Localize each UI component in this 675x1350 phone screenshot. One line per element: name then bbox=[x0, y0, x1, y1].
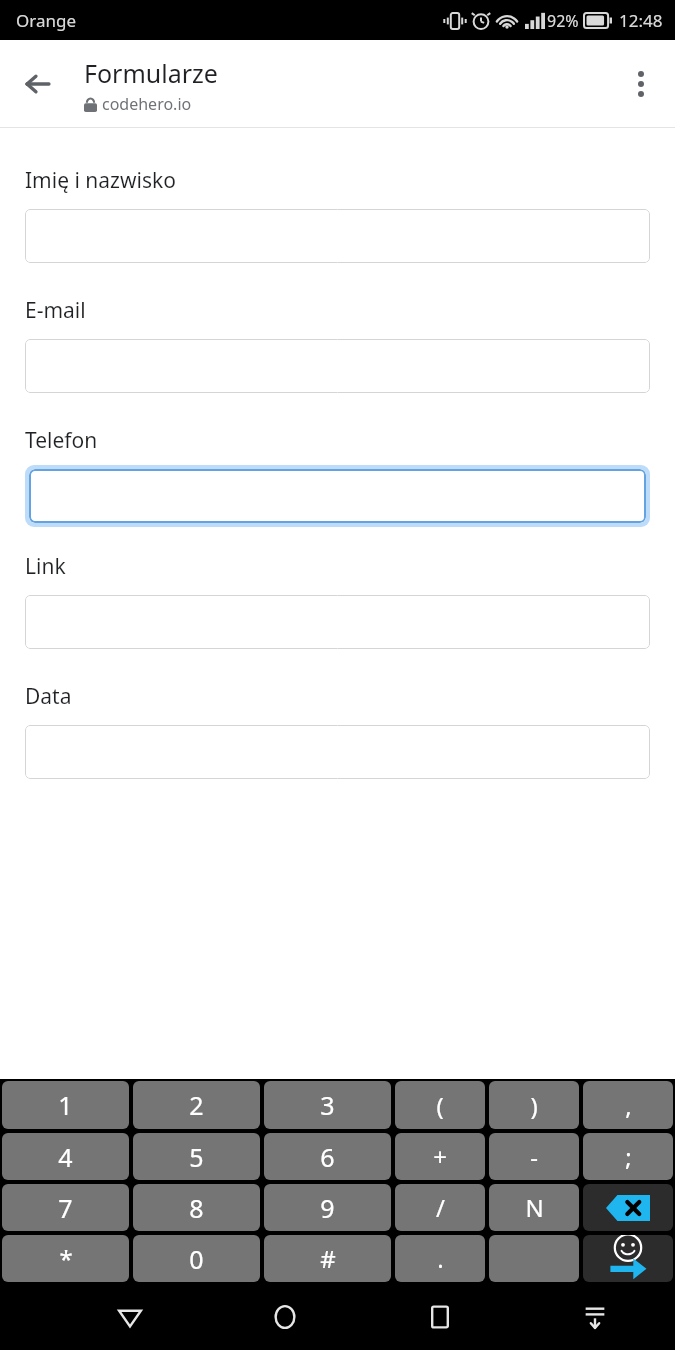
staticText: . bbox=[437, 1242, 444, 1275]
staticText: Imię i nazwisko bbox=[25, 166, 176, 195]
button[interactable]: 4 bbox=[2, 1133, 129, 1180]
button[interactable]: - bbox=[489, 1133, 579, 1180]
staticText: 1 bbox=[58, 1088, 73, 1122]
button[interactable]: 2 bbox=[133, 1081, 260, 1129]
button[interactable]: 7 bbox=[2, 1184, 129, 1231]
staticText: Orange bbox=[16, 9, 77, 32]
button[interactable] bbox=[25, 595, 650, 649]
button[interactable]: ; bbox=[583, 1133, 673, 1180]
button[interactable]: + bbox=[395, 1133, 485, 1180]
button[interactable]: 5 bbox=[133, 1133, 260, 1180]
staticText: Link bbox=[25, 552, 66, 581]
button[interactable]: Home bbox=[255, 1287, 315, 1347]
staticText: Formularze bbox=[84, 56, 218, 90]
staticText: codehero.io bbox=[102, 93, 192, 115]
button[interactable]: 9 bbox=[264, 1184, 391, 1231]
staticText: N bbox=[525, 1191, 544, 1224]
staticText: , bbox=[625, 1089, 632, 1122]
button[interactable]: * bbox=[2, 1235, 129, 1282]
button[interactable]: Recent apps bbox=[410, 1287, 470, 1347]
button[interactable] bbox=[25, 725, 650, 779]
button[interactable]: Back bbox=[100, 1287, 160, 1347]
button[interactable]: 0 bbox=[133, 1235, 260, 1282]
staticText: Data bbox=[25, 682, 72, 711]
button[interactable]: 8 bbox=[133, 1184, 260, 1231]
staticText: ( bbox=[436, 1089, 444, 1122]
staticText: ) bbox=[530, 1089, 538, 1122]
staticText: + bbox=[433, 1140, 447, 1173]
staticText: E-mail bbox=[25, 296, 86, 325]
staticText: 3 bbox=[320, 1088, 335, 1122]
button[interactable]: Back bbox=[10, 56, 66, 112]
button[interactable]: / bbox=[395, 1184, 485, 1231]
staticText: 8 bbox=[189, 1191, 204, 1225]
staticText: 12:48 bbox=[619, 9, 663, 32]
button[interactable] bbox=[25, 339, 650, 393]
button[interactable]: N bbox=[489, 1184, 579, 1231]
button[interactable]: More options bbox=[613, 56, 669, 112]
button[interactable]: . bbox=[395, 1235, 485, 1282]
staticText: 7 bbox=[58, 1191, 73, 1225]
staticText: * bbox=[59, 1242, 73, 1275]
staticText: ; bbox=[625, 1140, 632, 1173]
staticText: - bbox=[530, 1140, 538, 1173]
staticText: 4 bbox=[58, 1140, 73, 1174]
staticText: 9 bbox=[320, 1191, 335, 1225]
staticText: 5 bbox=[189, 1140, 204, 1174]
button[interactable]: , bbox=[583, 1081, 673, 1129]
button[interactable]: 3 bbox=[264, 1081, 391, 1129]
staticText: 0 bbox=[189, 1242, 204, 1276]
button[interactable]: Backspace bbox=[583, 1184, 673, 1231]
staticText: 6 bbox=[320, 1140, 335, 1174]
button[interactable]: ( bbox=[395, 1081, 485, 1129]
staticText: Telefon bbox=[25, 426, 98, 455]
button[interactable] bbox=[489, 1235, 579, 1282]
button[interactable]: Enter bbox=[583, 1235, 673, 1282]
button[interactable]: Hide keyboard bbox=[565, 1287, 625, 1347]
staticText: / bbox=[436, 1191, 445, 1224]
button[interactable]: 1 bbox=[2, 1081, 129, 1129]
staticText: # bbox=[320, 1242, 336, 1275]
button[interactable]: 6 bbox=[264, 1133, 391, 1180]
staticText: 2 bbox=[189, 1088, 204, 1122]
button[interactable] bbox=[25, 209, 650, 263]
button[interactable] bbox=[29, 469, 646, 523]
button[interactable]: ) bbox=[489, 1081, 579, 1129]
button[interactable]: # bbox=[264, 1235, 391, 1282]
staticText: 92% bbox=[547, 10, 579, 32]
